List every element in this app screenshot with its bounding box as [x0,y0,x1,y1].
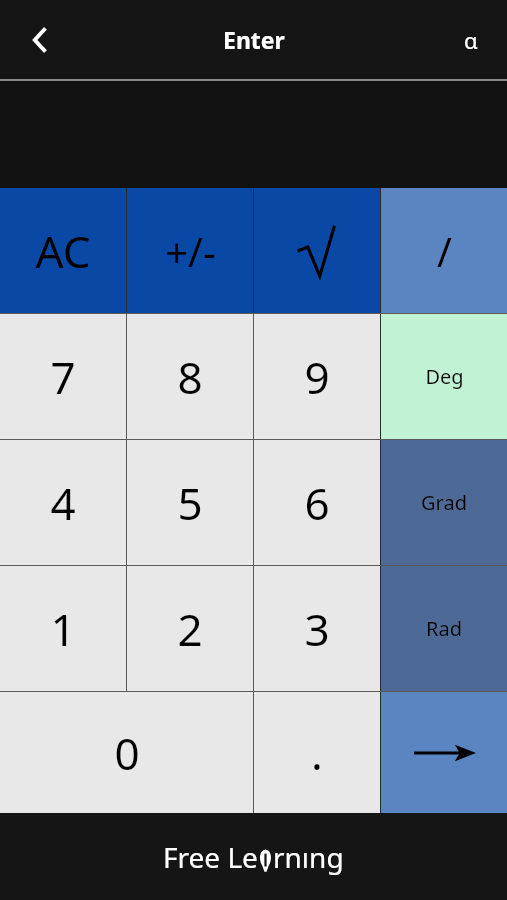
button[interactable]: Enter [381,692,507,813]
button[interactable]: Rad [381,566,507,691]
staticText: Enter [223,24,285,55]
button[interactable]: Deg [381,314,507,439]
staticText: 1 [50,599,76,659]
staticText: AC [35,221,91,281]
button[interactable]: 9 [254,314,380,439]
button[interactable]: / [381,188,507,313]
button[interactable]: +/- [127,188,253,313]
staticText: α [464,25,478,55]
staticText: 8 [177,347,203,407]
button[interactable]: Symbols [447,16,495,64]
button[interactable]: 4 [0,440,126,565]
button[interactable]: . [254,692,380,813]
staticText: 6 [304,473,330,533]
button[interactable]: 0 [0,692,253,813]
staticText: Grad [421,489,467,516]
staticText: 5 [177,473,203,533]
staticText: / [437,224,452,278]
staticText: 4 [50,473,76,533]
staticText: 9 [304,347,330,407]
staticText: Rad [426,615,462,642]
button[interactable]: Square root [254,188,380,313]
button[interactable]: 1 [0,566,126,691]
button[interactable]: 2 [127,566,253,691]
staticText: 3 [304,599,330,659]
staticText: 7 [50,347,76,407]
staticText: +/- [165,224,216,278]
staticText: rnıng [273,838,344,876]
staticText: 2 [177,599,203,659]
button[interactable]: Back [16,15,66,65]
button[interactable]: 6 [254,440,380,565]
button[interactable]: 5 [127,440,253,565]
staticText: Free Le [163,838,258,876]
staticText: 0 [114,723,140,783]
button[interactable]: 3 [254,566,380,691]
button[interactable]: AC [0,188,126,313]
button[interactable]: 7 [0,314,126,439]
staticText: . [311,723,323,783]
button[interactable]: 8 [127,314,253,439]
staticText: Deg [425,363,464,390]
button[interactable]: Grad [381,440,507,565]
